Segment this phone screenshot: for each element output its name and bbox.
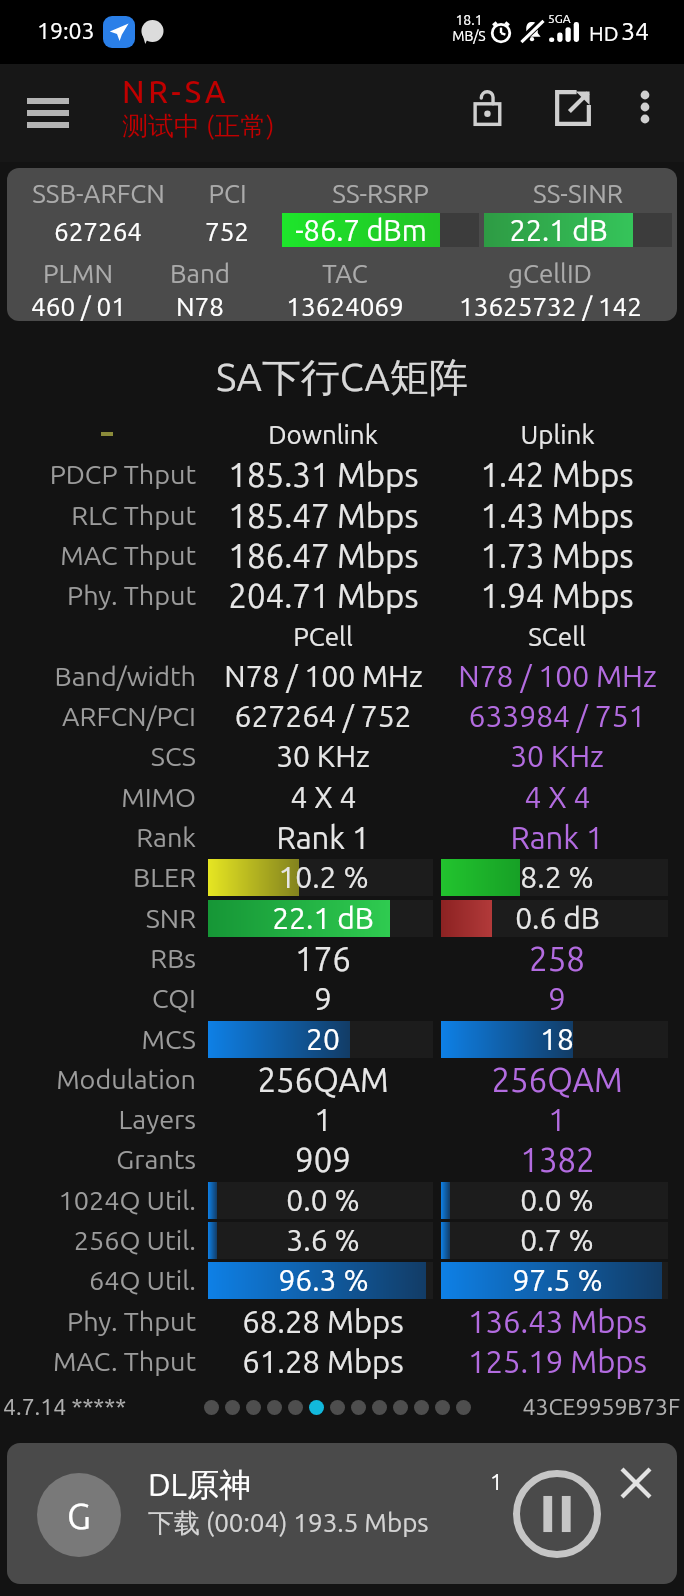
staticText: MAC. Thput — [0, 1346, 196, 1376]
staticText: Downlink — [268, 420, 378, 449]
staticText: 627264 — [54, 217, 142, 246]
staticText: N78 — [176, 292, 224, 321]
button[interactable]: More options — [620, 82, 670, 132]
staticText: 258 — [529, 940, 585, 977]
staticText: 1 — [490, 1469, 503, 1494]
staticText: SSB-ARFCN — [32, 179, 165, 208]
staticText: 1.42 Mbps — [480, 456, 634, 493]
button[interactable]: Menu — [18, 83, 78, 143]
staticText: 13624069 — [286, 292, 404, 321]
staticText: 1.43 Mbps — [480, 497, 634, 534]
staticText: 4 X 4 — [524, 780, 591, 814]
staticText: 22.1 dB — [484, 214, 633, 247]
staticText: N78 / 100 MHz — [224, 659, 423, 693]
staticText: RLC Thput — [0, 500, 196, 530]
staticText: TAC — [322, 259, 368, 288]
staticText: 3.6 % — [286, 1223, 360, 1257]
staticText: 测试中 (正常) — [122, 110, 275, 143]
staticText: 8.2 % — [520, 860, 594, 894]
staticText: SA下行CA矩阵 — [0, 353, 684, 402]
staticText: 1 — [314, 1102, 332, 1137]
staticText: 627264 / 752 — [234, 699, 412, 733]
staticText: 97.5 % — [512, 1263, 603, 1297]
staticText: RBs — [0, 943, 196, 973]
staticText: 43CE9959B73F — [522, 1394, 680, 1420]
staticText: MAC Thput — [0, 540, 196, 570]
staticText: MB/S — [452, 28, 486, 44]
staticText: gCellID — [508, 259, 592, 288]
staticText: PDCP Thput — [0, 459, 196, 489]
staticText: 136.43 Mbps — [468, 1304, 647, 1339]
staticText: MCS — [0, 1024, 196, 1054]
button[interactable]: Pause — [511, 1468, 603, 1560]
staticText: 64Q Util. — [0, 1265, 196, 1295]
staticText: 30 KHz — [276, 739, 370, 773]
staticText: SNR — [0, 903, 196, 933]
staticText: 460 / 01 — [31, 292, 126, 321]
staticText: Grants — [0, 1144, 196, 1174]
button[interactable]: Lock — [460, 80, 516, 136]
staticText: SCS — [0, 741, 196, 771]
staticText: BLER — [0, 862, 196, 892]
staticText: 752 — [205, 217, 249, 246]
staticText: 204.71 Mbps — [228, 577, 419, 614]
staticText: Rank 1 — [510, 820, 604, 855]
staticText: 1.73 Mbps — [480, 537, 634, 574]
staticText: Band — [170, 259, 230, 288]
staticText: 256Q Util. — [0, 1225, 196, 1255]
staticText: 0.0 % — [286, 1183, 360, 1217]
staticText: Rank 1 — [276, 820, 370, 855]
staticText: 9 — [548, 981, 566, 1016]
staticText: N78 / 100 MHz — [458, 659, 657, 693]
staticText: 633984 / 751 — [468, 699, 646, 733]
staticText: Layers — [0, 1104, 196, 1134]
staticText: 0.7 % — [520, 1223, 594, 1257]
staticText: 13625732 / 142 — [459, 292, 642, 321]
staticText: 30 KHz — [510, 739, 604, 773]
staticText: 0.0 % — [520, 1183, 594, 1217]
staticText: 10.2 % — [278, 860, 369, 894]
staticText: -86.7 dBm — [282, 214, 440, 247]
staticText: 256QAM — [257, 1061, 389, 1098]
staticText: PCI — [208, 179, 247, 208]
staticText: 1 — [548, 1102, 566, 1137]
staticText: 4 X 4 — [290, 780, 357, 814]
staticText: 1.94 Mbps — [480, 577, 634, 614]
staticText: 256QAM — [491, 1061, 623, 1098]
staticText: SS-SINR — [533, 179, 623, 208]
staticText: Phy. Thput — [0, 580, 196, 610]
staticText: DL原神 — [148, 1465, 251, 1505]
staticText: CQI — [0, 983, 196, 1013]
staticText: 1024Q Util. — [0, 1185, 196, 1215]
staticText: 20 — [306, 1022, 340, 1056]
staticText: 18 — [540, 1022, 574, 1056]
staticText: 9 — [314, 981, 332, 1016]
staticText: 18.1 — [455, 12, 483, 28]
staticText: 185.47 Mbps — [228, 497, 419, 534]
staticText: ARFCN/PCI — [0, 701, 196, 731]
staticText: Phy. Thput — [0, 1306, 196, 1336]
staticText: 下载 (00:04) 193.5 Mbps — [148, 1507, 429, 1540]
staticText: 5GA — [548, 12, 571, 25]
staticText: MIMO — [0, 782, 196, 812]
staticText: Band/width — [0, 661, 196, 691]
staticText: 176 — [295, 940, 351, 977]
staticText: Modulation — [0, 1064, 196, 1094]
staticText: SS-RSRP — [332, 179, 429, 208]
staticText: PCell — [293, 622, 353, 651]
staticText: 22.1 dB — [272, 901, 374, 935]
staticText: Uplink — [520, 420, 595, 449]
staticText: 185.31 Mbps — [228, 456, 419, 493]
staticText: 34 — [621, 17, 650, 45]
staticText: 61.28 Mbps — [242, 1344, 404, 1379]
staticText: 68.28 Mbps — [242, 1304, 404, 1339]
staticText: 4.7.14 ***** — [3, 1394, 127, 1420]
staticText: NR-SA — [122, 74, 230, 109]
button[interactable]: Share — [545, 80, 601, 136]
staticText: HD — [589, 21, 619, 45]
staticText: PLMN — [43, 259, 113, 288]
button[interactable]: Close — [614, 1461, 658, 1505]
staticText: Rank — [0, 822, 196, 852]
staticText: 1382 — [520, 1141, 595, 1178]
staticText: 186.47 Mbps — [228, 537, 419, 574]
